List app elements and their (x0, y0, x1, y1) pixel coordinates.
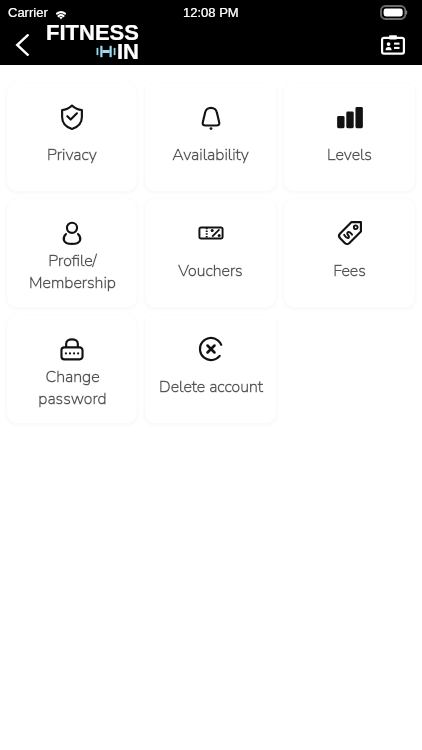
staticText: Availability (172, 144, 249, 166)
button[interactable]: Fees (284, 199, 415, 307)
staticText: IN (117, 39, 139, 64)
staticText: FITNESS (46, 20, 139, 45)
button[interactable]: Back (6, 24, 38, 65)
button[interactable]: Availability (145, 83, 276, 191)
staticText: Vouchers (178, 260, 243, 282)
button[interactable]: Change password (7, 315, 137, 423)
button[interactable]: Membership card (376, 28, 410, 62)
staticText: Carrier (8, 5, 48, 20)
staticText: Privacy (47, 144, 97, 166)
button[interactable]: Vouchers (145, 199, 276, 307)
button[interactable]: Levels (284, 83, 415, 191)
button[interactable]: Privacy (7, 83, 137, 191)
staticText: Profile/ Membership (29, 250, 116, 293)
button[interactable]: Delete account (145, 315, 276, 423)
staticText: Fees (333, 260, 366, 282)
staticText: Change password (38, 366, 107, 409)
button[interactable]: Profile/ Membership (7, 199, 137, 307)
staticText: Delete account (159, 376, 263, 398)
staticText: 12:08 PM (183, 5, 239, 20)
staticText: Levels (327, 144, 372, 166)
